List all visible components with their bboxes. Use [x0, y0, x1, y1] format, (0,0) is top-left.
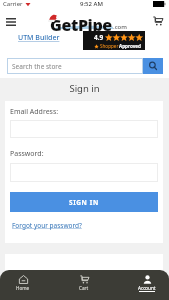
staticText: Search the store — [12, 62, 62, 71]
button[interactable]: Shopping cart — [149, 12, 167, 30]
staticText: Email Address: — [10, 107, 59, 117]
staticText: Approved — [119, 43, 141, 49]
button[interactable]: Account — [125, 270, 169, 300]
staticText: 9:52 AM — [80, 0, 103, 8]
staticText: Shopper — [100, 43, 119, 49]
staticText: Home — [16, 285, 30, 291]
button[interactable]: 4.9 — [83, 31, 145, 50]
button[interactable] — [10, 163, 158, 182]
button[interactable]: Forgot your password? — [12, 221, 82, 230]
staticText: Account — [138, 285, 156, 291]
staticText: Password: — [10, 149, 44, 159]
button[interactable]: UTM Builder — [18, 33, 60, 43]
staticText: UTM Builder — [18, 33, 60, 43]
staticText: 4.9 — [94, 33, 104, 42]
staticText: .com — [113, 23, 127, 31]
staticText: Forgot your password? — [12, 221, 82, 230]
staticText: Carrier — [3, 0, 23, 8]
button[interactable]: SIGN IN — [10, 192, 158, 212]
staticText: Cart — [79, 285, 89, 291]
button[interactable]: Search — [143, 58, 163, 74]
button[interactable]: Search the store — [7, 58, 143, 74]
button[interactable] — [10, 120, 158, 138]
staticText: Sign in — [0, 82, 169, 95]
button[interactable]: Cart — [62, 270, 106, 300]
staticText: SIGN IN — [69, 198, 99, 207]
button[interactable]: Home — [1, 270, 45, 300]
button[interactable]: Open menu — [2, 13, 20, 31]
staticText: GetPipe — [50, 14, 112, 34]
